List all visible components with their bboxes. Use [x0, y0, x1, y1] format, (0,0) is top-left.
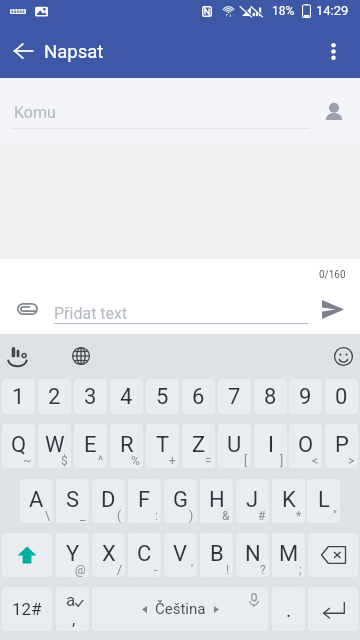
staticText: 12# [12, 599, 42, 619]
button[interactable]: R [110, 424, 143, 468]
button[interactable]: S [56, 479, 89, 523]
staticText: a [66, 590, 76, 610]
button[interactable]: 4 [110, 379, 143, 414]
button[interactable] [2, 533, 52, 577]
button[interactable]: U [218, 424, 251, 468]
button[interactable]: 3 [74, 379, 107, 414]
staticText: G [173, 487, 188, 513]
button[interactable]: Z [182, 424, 215, 468]
button[interactable]: 2 [38, 379, 71, 414]
staticText: : [155, 509, 158, 523]
button[interactable]: W [38, 424, 71, 468]
button[interactable]: C [128, 533, 161, 577]
button[interactable]: Enter [308, 587, 358, 631]
staticText: W [45, 432, 65, 458]
staticText: ( [117, 509, 122, 523]
staticText: B [210, 541, 224, 567]
staticText: [ [244, 454, 248, 468]
button[interactable]: T [146, 424, 179, 468]
staticText: J [246, 487, 259, 513]
staticText: ; [299, 563, 302, 577]
staticText: ~ [23, 454, 32, 468]
button[interactable]: 7 [218, 379, 251, 414]
staticText: R [120, 432, 134, 458]
button[interactable]: N [236, 533, 269, 577]
button[interactable]: Komu [14, 103, 56, 122]
staticText: K [282, 487, 296, 513]
staticText: 2 [48, 384, 61, 410]
staticText: & [222, 509, 230, 523]
staticText: 18% [272, 4, 295, 18]
button[interactable]: More options [315, 33, 351, 69]
staticText: M [279, 541, 299, 567]
button[interactable]: Backspace [308, 533, 358, 577]
staticText: ' [191, 563, 194, 577]
button[interactable]: X [92, 533, 125, 577]
button[interactable]: A [20, 479, 53, 523]
staticText: 0 [335, 384, 348, 410]
staticText: . [286, 598, 292, 621]
staticText: \ [45, 509, 50, 523]
button[interactable]: O [289, 424, 322, 468]
button[interactable]: Back [5, 33, 41, 69]
staticText: S [66, 487, 80, 513]
button[interactable]: Y [56, 533, 89, 577]
staticText: $ [61, 454, 68, 468]
button[interactable]: K [272, 479, 305, 523]
staticText: H [209, 487, 225, 513]
other: Voice input [249, 593, 259, 607]
button[interactable]: Q [2, 424, 35, 468]
staticText: > [348, 454, 355, 468]
button[interactable]: Language [64, 339, 98, 373]
button[interactable]: G [164, 479, 197, 523]
staticText: 5 [156, 384, 169, 410]
button[interactable]: Keyboard menu [0, 338, 35, 373]
button[interactable]: Emoji [326, 339, 360, 373]
staticText: - [154, 563, 158, 577]
staticText: < [312, 454, 319, 468]
button[interactable]: D [92, 479, 125, 523]
staticText: V [173, 541, 188, 567]
button[interactable]: 12# [2, 587, 52, 631]
button[interactable]: I [254, 424, 287, 468]
button[interactable]: J [236, 479, 269, 523]
staticText: ) [189, 509, 194, 523]
button[interactable]: P [325, 424, 358, 468]
staticText: , [72, 609, 76, 629]
button[interactable]: a [56, 587, 89, 631]
staticText: 7 [228, 384, 241, 410]
button[interactable]: V [164, 533, 197, 577]
button[interactable]: Send [314, 290, 352, 328]
staticText: # [258, 509, 266, 523]
button[interactable]: 9 [289, 379, 322, 414]
button[interactable]: 8 [254, 379, 287, 414]
button[interactable]: F [128, 479, 161, 523]
staticText: 1 [12, 384, 25, 410]
button[interactable]: Choose contact [316, 93, 352, 129]
staticText: F [138, 487, 151, 513]
staticText: 6 [192, 384, 205, 410]
button[interactable]: B [200, 533, 233, 577]
staticText: Čeština [155, 600, 206, 618]
button[interactable]: 5 [146, 379, 179, 414]
button[interactable]: Čeština [92, 587, 268, 631]
button[interactable]: Attach [8, 290, 46, 328]
button[interactable]: . [272, 587, 305, 631]
button[interactable]: 1 [2, 379, 35, 414]
staticText: Y [66, 541, 80, 567]
button[interactable]: 6 [182, 379, 215, 414]
staticText: O [298, 432, 314, 458]
staticText: _ [80, 509, 86, 523]
staticText: ^ [98, 454, 104, 468]
staticText: 14:29 [316, 3, 349, 18]
button[interactable]: L [307, 479, 340, 523]
staticText: Napsat [44, 41, 104, 63]
staticText: ] [280, 454, 284, 468]
button[interactable]: 0 [325, 379, 358, 414]
button[interactable]: E [74, 424, 107, 468]
staticText: I [268, 432, 274, 458]
button[interactable]: M [272, 533, 305, 577]
staticText: / [117, 563, 122, 577]
button[interactable]: H [200, 479, 233, 523]
button[interactable]: Přidat text [54, 304, 128, 323]
